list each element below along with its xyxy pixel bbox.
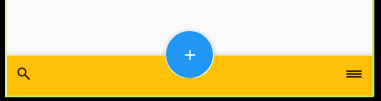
button[interactable]: Menu	[336, 56, 372, 92]
button[interactable]: Search	[4, 54, 40, 90]
button[interactable]: Add	[166, 31, 213, 78]
